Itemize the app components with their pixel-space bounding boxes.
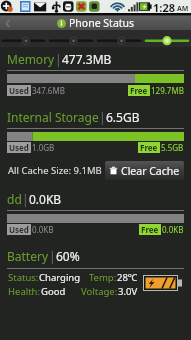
staticText: 28℃ [117,271,138,284]
staticText: | [49,248,56,264]
staticText: 129.7MB [151,85,184,96]
button[interactable]: GPS [95,30,143,47]
staticText: Good [41,285,66,298]
staticText: 6.5GB [106,109,140,125]
staticText: All Cache Size: 9.1MB [8,164,102,177]
staticText: | [22,191,29,207]
staticText: 3.0V [118,285,138,298]
button[interactable]: Sync [143,30,191,47]
staticText: Used [9,142,29,153]
button[interactable]: Back [0,15,191,30]
button[interactable]: Bluetooth [47,30,95,47]
staticText: Battery [7,248,49,264]
button[interactable]: Wi-Fi [0,30,47,47]
staticText: Clear Cache [121,164,180,178]
staticText: 0.0KB [162,224,184,235]
staticText: 60% [56,248,80,264]
other: Back [2,17,14,29]
staticText: dd [7,191,22,207]
staticText: Internal Storage [7,109,99,125]
staticText: Free [141,224,159,235]
staticText: Free [130,85,148,96]
staticText: 347.6MB [32,85,65,96]
staticText: Used [9,224,29,235]
staticText: Phone Status [69,16,135,30]
staticText: Used [9,85,29,96]
staticText: | [55,51,62,67]
staticText: Health: [8,285,41,298]
staticText: 1:28 [153,0,175,15]
staticText: 1.0GB [32,142,55,153]
staticText: Voltage: [81,285,118,298]
staticText: Temp: [89,271,117,284]
button[interactable]: Clear Cache [105,161,184,180]
staticText: AM [177,4,189,14]
staticText: Charging [39,271,81,284]
staticText: 477.3MB [62,51,112,67]
staticText: | [99,109,106,125]
staticText: 0.0KB [29,191,62,207]
staticText: Memory [7,51,55,67]
staticText: Status: [8,271,39,284]
staticText: Free [140,142,158,153]
staticText: 0.0KB [32,224,54,235]
staticText: 5.5GB [161,142,184,153]
